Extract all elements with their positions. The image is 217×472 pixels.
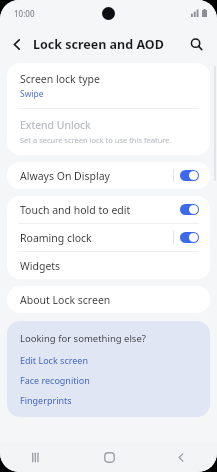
button[interactable]: Roaming clock [7, 224, 210, 251]
staticText: Fingerprints [20, 394, 72, 406]
button[interactable]: Screen lock type [7, 63, 210, 108]
staticText: Screen lock type [20, 72, 100, 86]
button[interactable]: Back [5, 32, 30, 57]
button[interactable]: Always On Display toggle [180, 170, 199, 181]
button[interactable]: Roaming clock toggle [180, 232, 199, 243]
button[interactable]: Extend Unlock [7, 109, 210, 155]
button[interactable]: Fingerprints [20, 394, 72, 406]
button[interactable]: Recents [0, 442, 73, 472]
staticText: Widgets [20, 259, 61, 273]
button[interactable]: Back [145, 442, 217, 472]
staticText: Edit Lock screen [20, 354, 88, 366]
staticText: About Lock screen [20, 293, 111, 307]
button[interactable]: Face recognition [20, 374, 90, 386]
staticText: Set a secure screen lock to use this fea… [20, 135, 172, 145]
staticText: Touch and hold to edit [20, 203, 131, 217]
button[interactable]: Search [184, 32, 209, 57]
staticText: Face recognition [20, 374, 90, 386]
button[interactable]: Always On Display [7, 162, 210, 189]
button[interactable]: Touch and hold to edit toggle [180, 204, 199, 215]
staticText: Lock screen and AOD [33, 36, 164, 53]
staticText: Swipe [20, 88, 44, 100]
button[interactable]: Edit Lock screen [20, 354, 88, 366]
staticText: Looking for something else? [20, 332, 146, 345]
button[interactable]: Home [73, 442, 145, 472]
button[interactable]: Widgets [7, 252, 210, 279]
button[interactable]: About Lock screen [7, 286, 210, 313]
staticText: Roaming clock [20, 231, 92, 245]
staticText: Always On Display [20, 169, 110, 183]
staticText: 10:00 [14, 8, 35, 19]
staticText: Extend Unlock [20, 118, 91, 132]
button[interactable]: Touch and hold to edit [7, 196, 210, 223]
